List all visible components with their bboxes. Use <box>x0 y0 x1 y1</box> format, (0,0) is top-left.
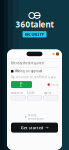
button[interactable]: Approve <box>11 81 32 88</box>
staticText: Secure connection <box>28 113 44 121</box>
staticText: Get started <box>21 125 44 130</box>
staticText: Code <box>27 91 35 95</box>
staticText: Identity check required <box>11 61 44 65</box>
staticText: Approve <box>20 74 23 95</box>
staticText: Access ID <box>11 91 23 95</box>
staticText: Waiting on approval <box>15 69 42 73</box>
staticText: Tap continue to confirm it is you <box>11 75 56 79</box>
button[interactable]: Get started <box>11 123 58 133</box>
staticText: SECURITY <box>24 32 44 37</box>
staticText: 360talent <box>15 19 53 30</box>
staticText: → <box>45 125 48 130</box>
staticText: Expiry <box>44 91 51 95</box>
button[interactable]: Deny <box>47 83 58 86</box>
staticText: Deny <box>51 83 58 86</box>
